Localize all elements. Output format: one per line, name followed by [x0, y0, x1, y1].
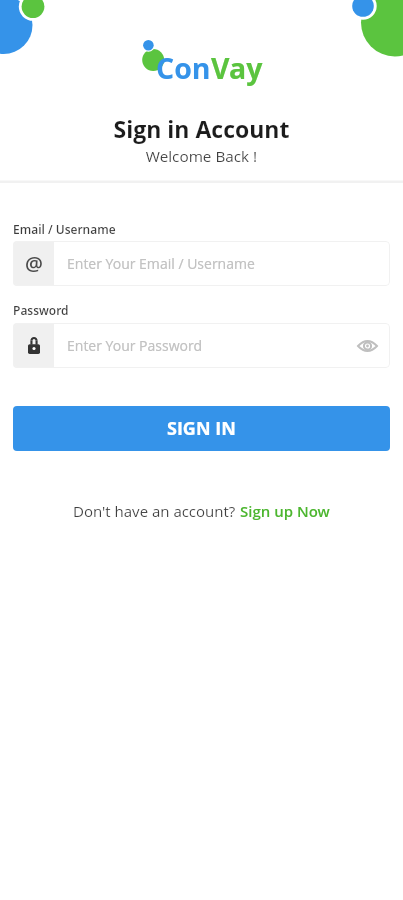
button[interactable]: Enter Your Password [13, 323, 390, 368]
staticText: Password [13, 302, 69, 318]
staticText: Enter Your Email / Username [67, 254, 255, 273]
staticText: Email / Username [13, 221, 116, 237]
staticText: Sign in Account [0, 113, 403, 144]
staticText: Vay [211, 49, 263, 88]
staticText: Welcome Back ! [0, 146, 403, 167]
button[interactable]: Don't have an account? [73, 501, 330, 521]
staticText: @ [25, 250, 43, 277]
staticText: SIGN IN [167, 416, 236, 441]
staticText: Don't have an account? [73, 501, 240, 521]
button[interactable]: SIGN IN [13, 406, 390, 451]
button[interactable]: Show password [355, 334, 379, 358]
staticText: Con [156, 49, 211, 88]
staticText: Enter Your Password [67, 336, 203, 355]
button[interactable]: @ [13, 241, 390, 286]
staticText: Sign up Now [240, 501, 330, 521]
